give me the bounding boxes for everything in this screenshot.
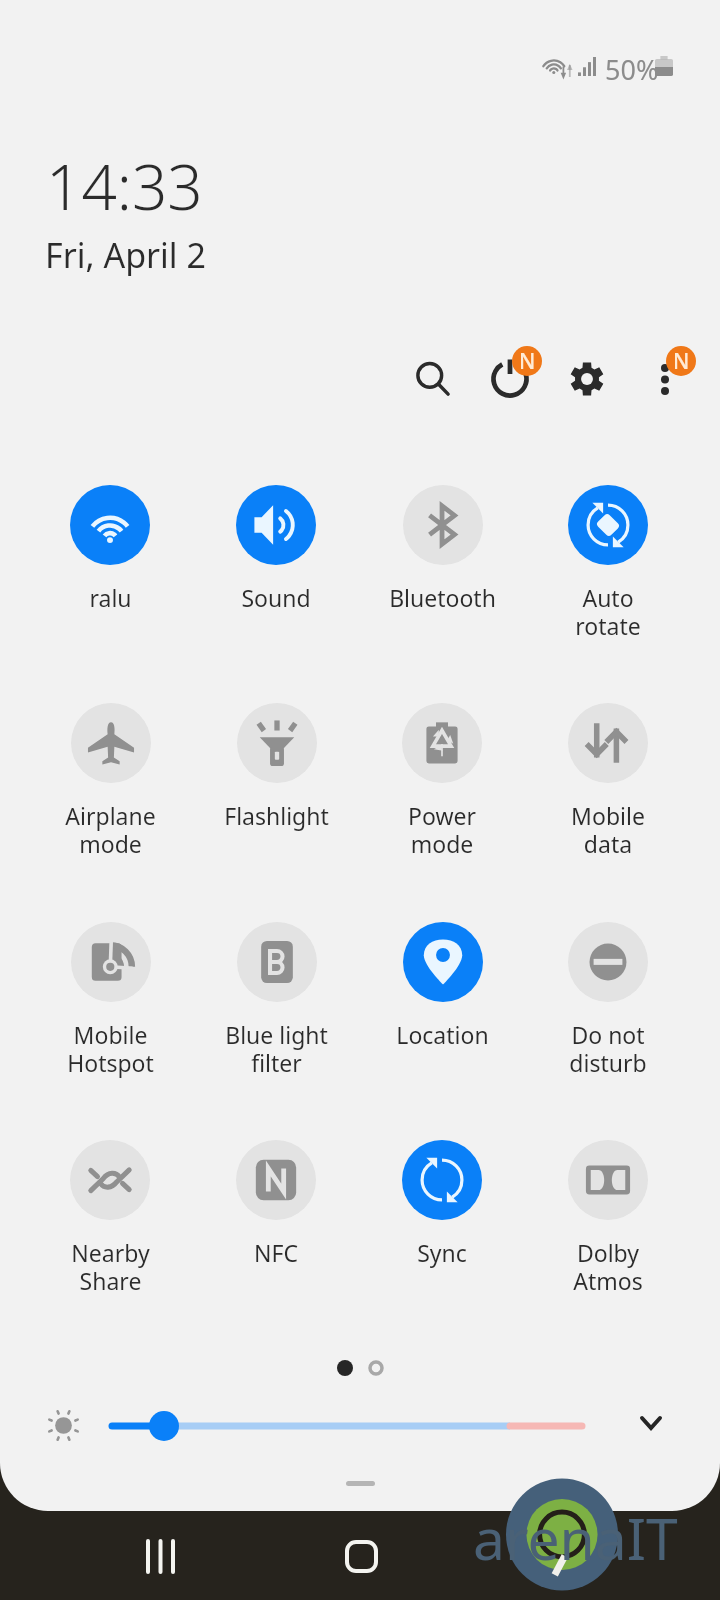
staticText: Power mode (408, 800, 476, 860)
button[interactable]: Airplane mode (27, 703, 193, 863)
button[interactable]: Dolby Atmos (525, 1140, 691, 1300)
button[interactable]: Mobile data (525, 703, 691, 863)
button[interactable]: Back (520, 1520, 600, 1592)
button[interactable]: Sound (193, 485, 359, 645)
staticText: Sound (241, 582, 311, 613)
button[interactable]: Do not disturb (525, 922, 691, 1082)
staticText: N (519, 347, 536, 376)
button[interactable]: Auto rotate (525, 485, 691, 645)
button[interactable]: Search (397, 343, 469, 415)
button[interactable]: Power mode (359, 703, 525, 863)
button[interactable]: Location (359, 922, 525, 1082)
staticText: Do not disturb (569, 1019, 647, 1079)
staticText: arenaIT (473, 1499, 678, 1577)
button[interactable]: Power off (474, 343, 546, 415)
button[interactable]: Bluetooth (359, 485, 525, 645)
button[interactable]: ralu (27, 485, 193, 645)
button[interactable]: Blue light filter (193, 922, 359, 1082)
staticText: NFC (254, 1237, 298, 1268)
staticText: N (673, 347, 690, 376)
button[interactable]: Settings (551, 343, 623, 415)
staticText: Auto rotate (575, 582, 641, 642)
staticText: 50% (605, 51, 659, 88)
staticText: Mobile data (571, 800, 645, 860)
staticText: Location (396, 1019, 489, 1050)
staticText: Dolby Atmos (573, 1237, 643, 1297)
staticText: ralu (89, 582, 132, 613)
staticText: Mobile Hotspot (67, 1019, 154, 1079)
button[interactable]: Nearby Share (27, 1140, 193, 1300)
button[interactable]: Mobile Hotspot (27, 922, 193, 1082)
button[interactable]: Home (321, 1520, 401, 1592)
button[interactable]: Recents (120, 1520, 200, 1592)
button[interactable]: More options (629, 343, 701, 415)
staticText: Sync (417, 1237, 467, 1268)
staticText: Fri, April 2 (45, 232, 206, 278)
staticText: Blue light filter (225, 1019, 328, 1079)
staticText: Bluetooth (389, 582, 496, 613)
button[interactable]: Sync (359, 1140, 525, 1300)
staticText: Flashlight (224, 800, 329, 831)
button[interactable]: Flashlight (193, 703, 359, 863)
staticText: 14:33 (46, 144, 203, 228)
staticText: Airplane mode (65, 800, 156, 860)
staticText: Nearby Share (71, 1237, 150, 1297)
button[interactable]: NFC (193, 1140, 359, 1300)
